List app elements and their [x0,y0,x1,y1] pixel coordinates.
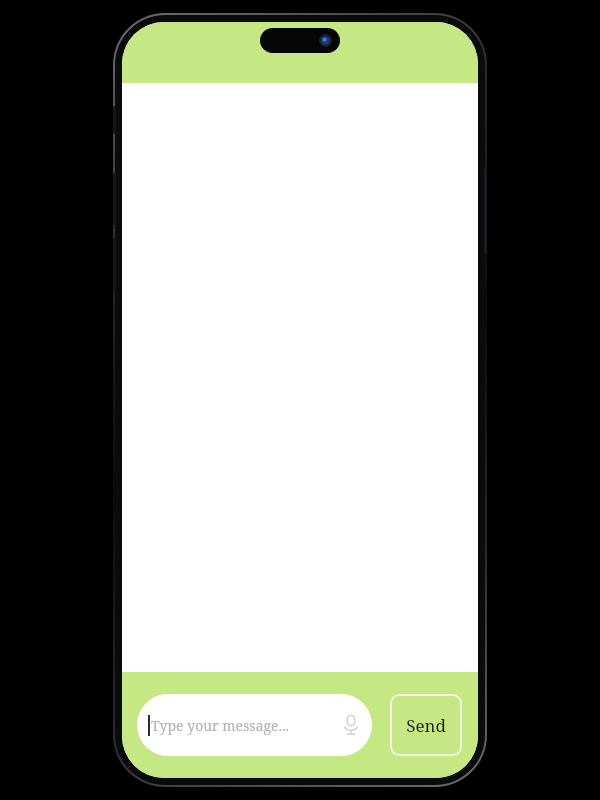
staticText: Type your message... [151,716,290,735]
button[interactable]: Type your message... [137,694,372,756]
button[interactable]: Send [390,694,462,756]
staticText: Send [406,714,446,737]
button[interactable]: Voice input [340,714,362,736]
